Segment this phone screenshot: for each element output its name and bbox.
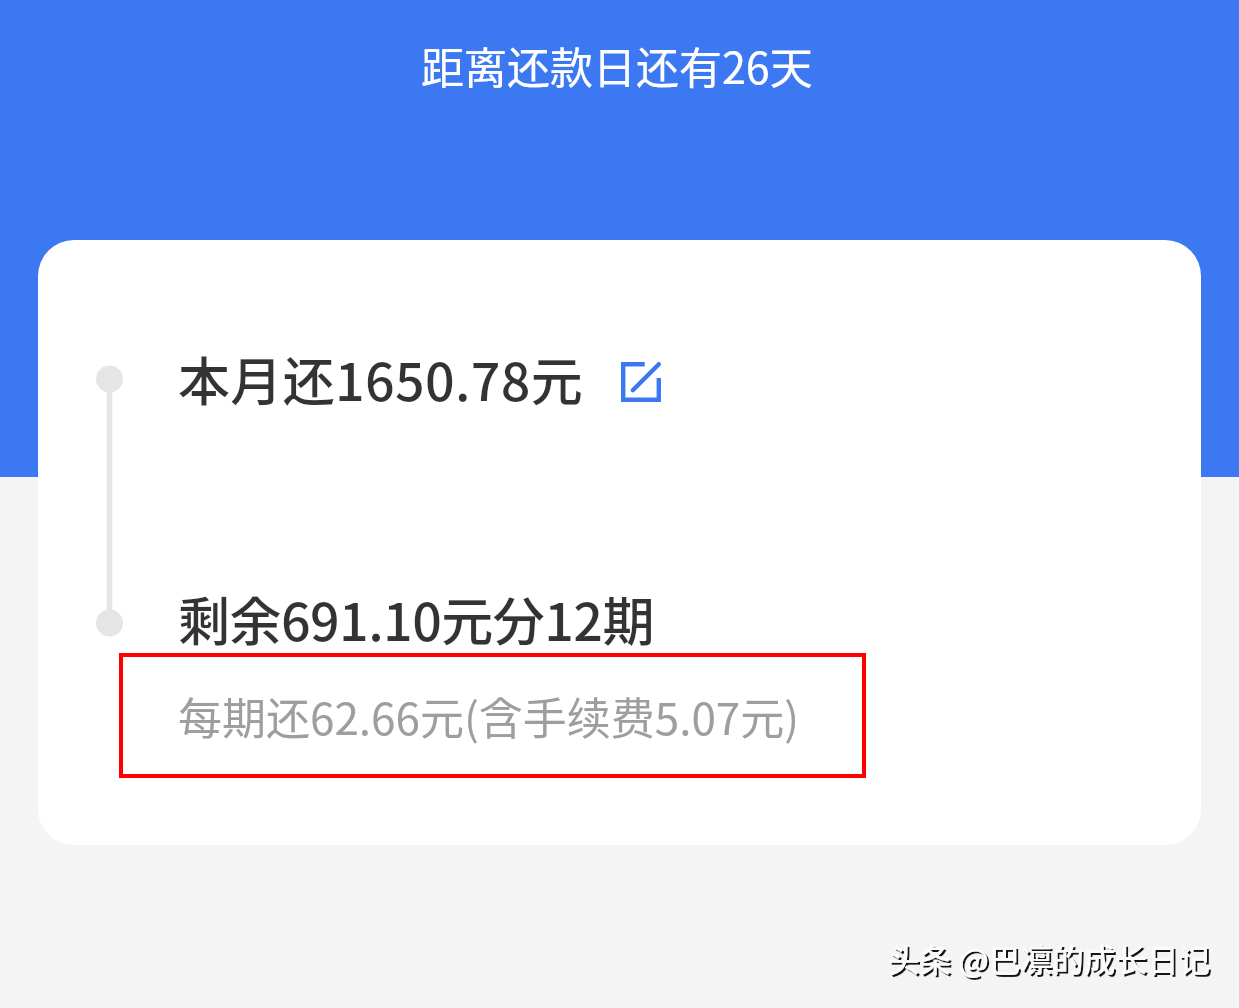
staticText: 头条 @巴凛的成长日记 — [890, 937, 1213, 983]
staticText: 每期还62.66元(含手续费5.07元) — [178, 684, 800, 748]
button[interactable]: 本月还1650.78元 — [78, 310, 608, 420]
staticText: 头条 @巴凛的成长日记 — [888, 935, 1211, 981]
button[interactable]: Edit this month's repayment amount — [617, 358, 665, 406]
staticText: 距离还款日还有26天 — [421, 34, 813, 96]
button[interactable]: 本月还1650.78元 — [38, 240, 1201, 845]
button[interactable]: 剩余691.10元分12期 — [78, 552, 868, 782]
staticText: 本月还1650.78元 — [178, 341, 584, 416]
staticText: 剩余691.10元分12期 — [178, 581, 654, 656]
